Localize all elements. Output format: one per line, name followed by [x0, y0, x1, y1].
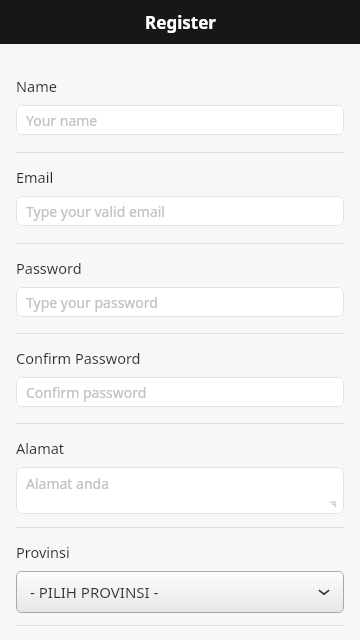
button[interactable]: - PILIH PROVINSI -: [16, 571, 344, 613]
staticText: Confirm Password: [16, 348, 141, 368]
other: Open province list: [318, 586, 330, 598]
button[interactable]: Type your valid email: [16, 196, 344, 226]
staticText: Type your valid email: [26, 202, 165, 221]
staticText: Confirm password: [26, 383, 147, 402]
staticText: Name: [16, 76, 57, 96]
staticText: Provinsi: [16, 542, 70, 562]
button[interactable]: Type your password: [16, 287, 344, 317]
staticText: Password: [16, 258, 82, 278]
staticText: Alamat anda: [26, 474, 110, 493]
button[interactable]: Confirm password: [16, 377, 344, 407]
button[interactable]: Alamat anda: [16, 467, 344, 514]
staticText: Your name: [26, 111, 98, 130]
staticText: Alamat: [16, 438, 65, 458]
staticText: Type your password: [26, 293, 158, 312]
staticText: - PILIH PROVINSI -: [30, 582, 159, 602]
staticText: Email: [16, 167, 54, 187]
button[interactable]: Your name: [16, 105, 344, 135]
staticText: Register: [145, 11, 216, 34]
